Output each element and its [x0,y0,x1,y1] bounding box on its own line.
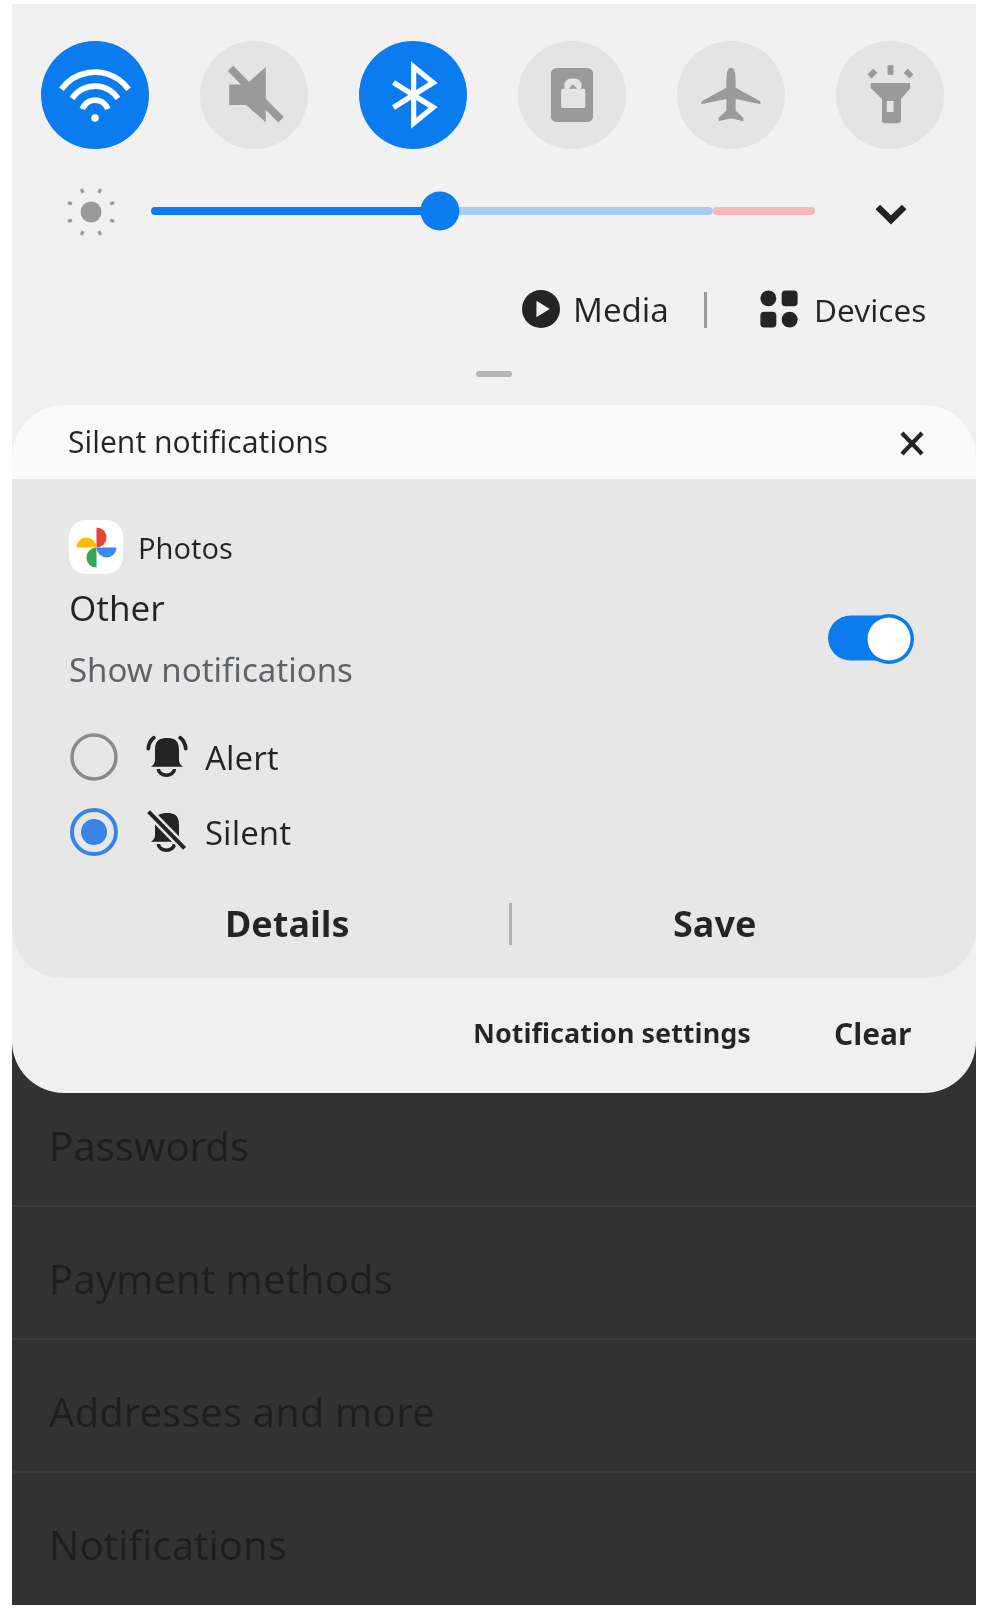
button[interactable]: Close [890,420,934,464]
button[interactable]: Clear [819,995,927,1071]
button[interactable]: Media [522,283,669,335]
button[interactable]: Save [483,879,947,967]
staticText: Alert [205,735,279,780]
button[interactable]: Expand quick settings [867,188,915,236]
button[interactable]: Flashlight [836,41,944,149]
button[interactable]: Show notifications toggle [822,607,932,669]
button[interactable]: Mute [200,41,308,149]
button[interactable]: Brightness [151,191,815,231]
staticText: Passwords [49,1118,250,1172]
staticText: Save [673,899,757,948]
staticText: Addresses and more [49,1384,435,1438]
button[interactable]: Alert [12,722,976,792]
staticText: Notifications [49,1517,287,1571]
button[interactable]: Notification settings [458,994,766,1070]
staticText: Notification settings [473,1014,751,1051]
staticText: Silent notifications [68,421,329,462]
staticText: Devices [814,288,927,331]
staticText: Other [69,584,165,632]
button[interactable]: Airplane mode [677,41,785,149]
button[interactable]: Drag handle [476,371,512,377]
button[interactable]: Details [39,879,536,967]
staticText: Silent [205,810,292,855]
staticText: Media [573,287,669,332]
button[interactable]: Photos [69,520,233,574]
button[interactable]: Silent [12,797,976,867]
staticText: Payment methods [49,1251,393,1305]
button[interactable]: Devices [760,283,927,335]
button[interactable]: Wi-Fi [41,41,149,149]
button[interactable]: Bluetooth [359,41,467,149]
staticText: Show notifications [69,647,353,692]
button[interactable]: Passwords [12,1074,976,1205]
staticText: Details [225,899,350,948]
button[interactable]: Screen lock [518,41,626,149]
staticText: Photos [138,528,233,567]
staticText: Clear [834,1013,912,1054]
